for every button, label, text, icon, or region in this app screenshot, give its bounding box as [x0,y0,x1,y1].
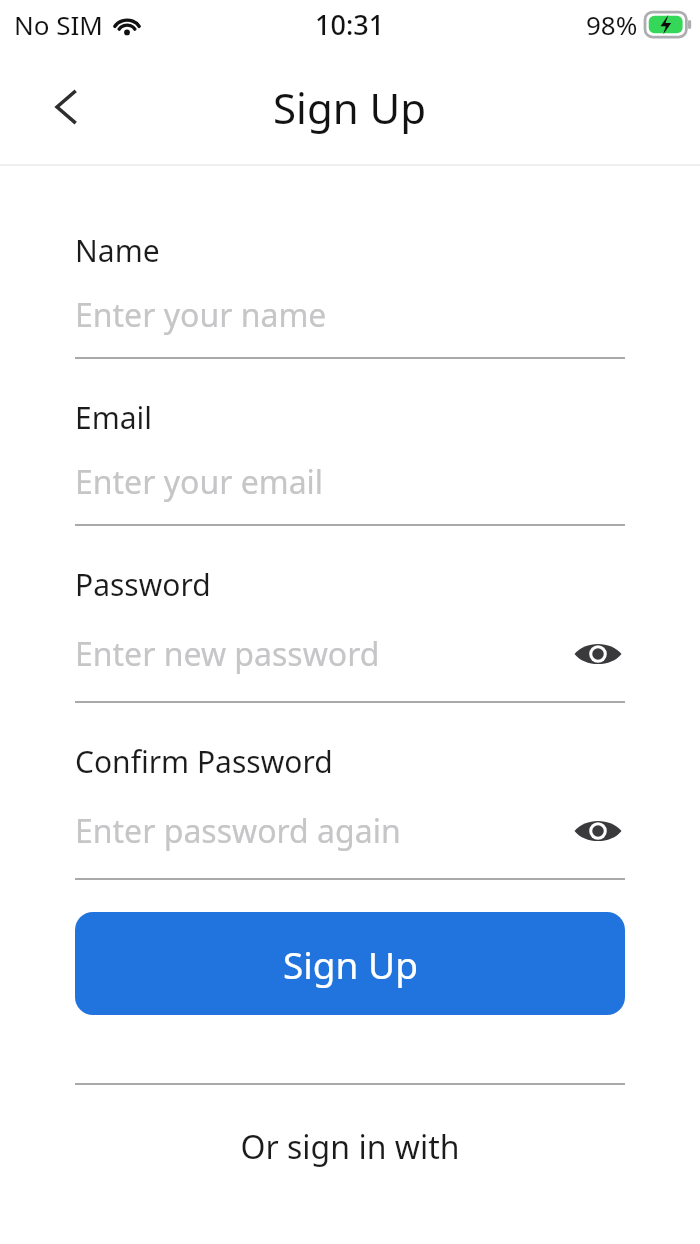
staticText: Name [75,230,160,271]
button[interactable]: Name [75,230,625,359]
staticText: No SIM [14,7,103,42]
staticText: 98% [586,7,638,42]
staticText: Sign Up [283,939,418,989]
staticText: Enter your email [75,460,625,504]
staticText: Enter your name [75,293,625,337]
staticText: Email [75,397,153,438]
button[interactable]: Show password [571,627,625,681]
button[interactable]: Back [34,75,98,139]
staticText: Enter new password [75,632,571,676]
button[interactable]: Show confirm password [571,804,625,858]
staticText: Or sign in with [0,1125,700,1169]
staticText: Enter password again [75,809,571,853]
button[interactable]: Password [75,564,625,703]
staticText: Confirm Password [75,741,333,782]
button[interactable]: Email [75,397,625,526]
button[interactable]: Confirm Password [75,741,625,880]
staticText: 10:31 [315,6,385,43]
staticText: Password [75,564,211,605]
staticText: Sign Up [273,79,427,136]
button[interactable]: Sign Up [75,912,625,1015]
